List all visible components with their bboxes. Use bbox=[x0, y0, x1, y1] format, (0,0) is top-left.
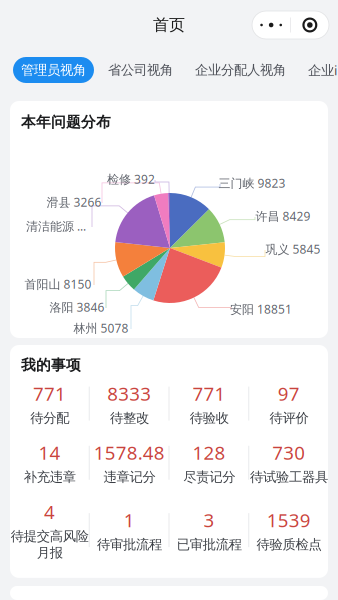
button[interactable]: 1539 bbox=[249, 500, 328, 560]
staticText: 清洁能源 ... bbox=[26, 218, 86, 234]
button[interactable]: 管理员视角 bbox=[13, 57, 94, 83]
button[interactable]: 更多 bbox=[252, 11, 329, 39]
staticText: 管理员视角 bbox=[21, 62, 86, 78]
staticText: 3 bbox=[203, 507, 214, 532]
staticText: 771 bbox=[192, 381, 225, 406]
staticText: 待试验工器具 bbox=[250, 469, 328, 485]
staticText: 待验收 bbox=[189, 410, 228, 426]
button[interactable]: 3 bbox=[169, 500, 248, 560]
staticText: 检修 392 bbox=[107, 171, 155, 187]
staticText: 违章记分 bbox=[103, 469, 155, 485]
staticText: 安阳 18851 bbox=[230, 301, 292, 317]
staticText: 730 bbox=[272, 440, 305, 465]
button[interactable]: 771 bbox=[169, 374, 248, 433]
staticText: 待提交高风险月报 bbox=[10, 528, 88, 561]
staticText: 林州 5078 bbox=[73, 320, 128, 336]
staticText: 8333 bbox=[107, 381, 151, 406]
staticText: 待整改 bbox=[110, 410, 149, 426]
staticText: 尽责记分 bbox=[183, 469, 235, 485]
staticText: 待审批流程 bbox=[97, 536, 162, 553]
staticText: 省公司视角 bbox=[108, 62, 173, 78]
staticText: 洛阳 3846 bbox=[49, 299, 104, 315]
staticText: 滑县 3266 bbox=[46, 194, 101, 210]
button[interactable]: 128 bbox=[169, 433, 248, 492]
staticText: 许昌 8429 bbox=[255, 208, 310, 224]
staticText: 首阳山 8150 bbox=[24, 276, 91, 292]
button[interactable]: 企业i bbox=[300, 57, 338, 83]
staticText: 已审批流程 bbox=[176, 536, 241, 553]
staticText: 771 bbox=[33, 381, 66, 406]
button[interactable]: 4 bbox=[10, 492, 89, 568]
button[interactable]: 1578.48 bbox=[90, 433, 169, 492]
button[interactable]: 97 bbox=[249, 374, 328, 433]
staticText: 首页 bbox=[153, 15, 185, 35]
staticText: 巩义 5845 bbox=[265, 241, 320, 257]
staticText: 4 bbox=[44, 499, 55, 524]
staticText: 补充违章 bbox=[23, 469, 75, 485]
staticText: 三门峡 9823 bbox=[218, 175, 285, 191]
staticText: 14 bbox=[38, 440, 60, 465]
staticText: 1539 bbox=[267, 507, 311, 532]
staticText: 本年问题分布 bbox=[21, 113, 111, 131]
staticText: 待分配 bbox=[30, 410, 69, 426]
button[interactable]: 771 bbox=[10, 374, 89, 433]
button[interactable]: 企业分配人视角 bbox=[187, 57, 294, 83]
staticText: 企业i bbox=[308, 61, 337, 79]
button[interactable]: 1 bbox=[90, 500, 169, 560]
button[interactable]: 730 bbox=[249, 433, 328, 492]
staticText: 我的事项 bbox=[21, 356, 81, 374]
button[interactable]: 14 bbox=[10, 433, 89, 492]
button[interactable]: 省公司视角 bbox=[100, 57, 181, 83]
staticText: 1 bbox=[124, 507, 135, 532]
staticText: 待验质检点 bbox=[256, 536, 321, 553]
staticText: 企业分配人视角 bbox=[195, 62, 286, 78]
staticText: 待评价 bbox=[269, 410, 308, 426]
staticText: 1578.48 bbox=[94, 440, 165, 465]
staticText: 97 bbox=[278, 381, 300, 406]
staticText: 128 bbox=[192, 440, 225, 465]
button[interactable]: 8333 bbox=[90, 374, 169, 433]
